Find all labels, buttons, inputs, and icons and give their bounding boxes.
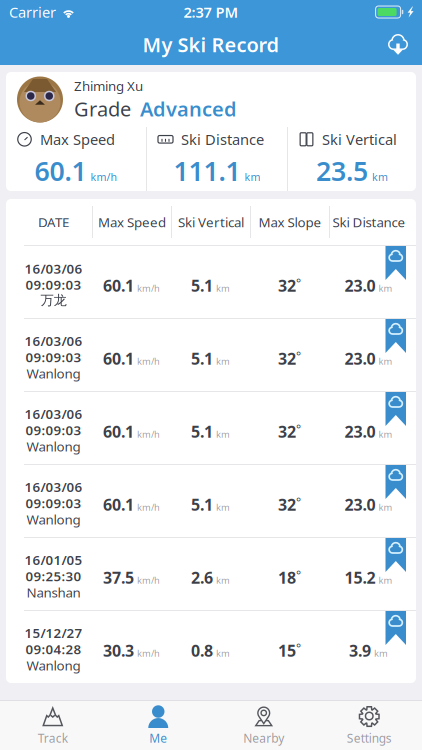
staticText: 09:09:03 bbox=[25, 348, 81, 366]
staticText: 30.3 bbox=[103, 640, 134, 661]
staticText: DATE bbox=[38, 213, 69, 231]
staticText: km bbox=[216, 355, 230, 367]
staticText: 37.5 bbox=[103, 567, 134, 588]
staticText: 23.5 bbox=[316, 153, 368, 188]
button[interactable]: 16/03/06 bbox=[6, 246, 416, 318]
staticText: 0.8 bbox=[191, 640, 213, 661]
staticText: 16/03/06 bbox=[24, 260, 82, 277]
staticText: 60.1 bbox=[103, 421, 134, 442]
button[interactable]: Download bbox=[376, 24, 420, 65]
button[interactable]: 16/03/06 bbox=[6, 319, 416, 391]
staticText: km bbox=[216, 428, 230, 440]
staticText: km/h bbox=[137, 501, 160, 513]
staticText: 09:04:28 bbox=[25, 640, 81, 658]
staticText: 2:37 PM bbox=[183, 2, 238, 22]
staticText: 5.1 bbox=[191, 348, 213, 369]
staticText: km/h bbox=[137, 647, 160, 659]
staticText: 5.1 bbox=[191, 275, 213, 296]
staticText: 32 bbox=[278, 275, 296, 296]
staticText: 3.9 bbox=[349, 640, 371, 661]
staticText: Wanlong bbox=[26, 510, 80, 528]
staticText: Max Slope bbox=[258, 213, 321, 231]
staticText: 09:09:03 bbox=[25, 276, 81, 293]
staticText: Ski Distance bbox=[332, 213, 405, 231]
staticText: ° bbox=[296, 567, 301, 583]
staticText: 32 bbox=[278, 348, 296, 369]
staticText: Ski Vertical bbox=[178, 213, 244, 231]
staticText: 09:09:03 bbox=[25, 494, 81, 512]
staticText: 23.0 bbox=[344, 421, 375, 442]
staticText: Settings bbox=[347, 730, 392, 746]
staticText: Ski Distance bbox=[181, 130, 264, 149]
staticText: 5.1 bbox=[191, 494, 213, 515]
staticText: km bbox=[378, 282, 392, 294]
staticText: 23.0 bbox=[344, 275, 375, 296]
staticText: 23.0 bbox=[344, 494, 375, 515]
staticText: km/h bbox=[137, 282, 160, 294]
staticText: 32 bbox=[278, 494, 296, 515]
staticText: 23.0 bbox=[344, 348, 375, 369]
staticText: ° bbox=[296, 348, 301, 364]
button[interactable]: Me bbox=[105, 701, 211, 750]
staticText: km/h bbox=[90, 170, 117, 184]
staticText: Zhiming Xu bbox=[74, 77, 143, 95]
staticText: Ski Vertical bbox=[322, 130, 397, 149]
staticText: km bbox=[216, 501, 230, 513]
staticText: ° bbox=[296, 640, 301, 656]
staticText: Advanced bbox=[140, 96, 237, 122]
staticText: km/h bbox=[137, 428, 160, 440]
button[interactable]: Nearby bbox=[211, 701, 316, 750]
staticText: Grade bbox=[74, 96, 131, 122]
staticText: 60.1 bbox=[103, 275, 134, 296]
staticText: km bbox=[216, 282, 230, 294]
staticText: km bbox=[244, 170, 260, 184]
staticText: 32 bbox=[278, 421, 296, 442]
staticText: My Ski Record bbox=[142, 31, 279, 58]
staticText: km bbox=[216, 574, 230, 586]
staticText: 111.1 bbox=[173, 153, 240, 188]
button[interactable]: 15/12/27 bbox=[6, 611, 416, 683]
staticText: km/h bbox=[137, 574, 160, 586]
staticText: Track bbox=[38, 730, 68, 746]
staticText: km/h bbox=[137, 355, 160, 367]
staticText: ° bbox=[296, 275, 301, 291]
staticText: 16/01/05 bbox=[24, 551, 82, 569]
staticText: 60.1 bbox=[34, 153, 86, 188]
staticText: Max Speed bbox=[40, 130, 115, 149]
staticText: 16/03/06 bbox=[24, 405, 82, 423]
button[interactable]: Track bbox=[0, 701, 105, 750]
staticText: Nearby bbox=[243, 730, 284, 746]
staticText: Me bbox=[149, 730, 167, 746]
button[interactable]: 16/03/06 bbox=[6, 465, 416, 537]
staticText: Wanlong bbox=[26, 364, 80, 382]
staticText: km bbox=[378, 501, 392, 513]
staticText: 15/12/27 bbox=[24, 624, 82, 642]
staticText: km bbox=[378, 428, 392, 440]
staticText: Max Speed bbox=[98, 213, 166, 231]
staticText: 18 bbox=[278, 567, 296, 588]
staticText: 15.2 bbox=[344, 567, 375, 588]
staticText: km bbox=[216, 647, 230, 659]
staticText: ° bbox=[296, 494, 301, 510]
staticText: ° bbox=[296, 421, 301, 437]
staticText: 60.1 bbox=[103, 348, 134, 369]
staticText: Nanshan bbox=[26, 583, 80, 601]
staticText: 60.1 bbox=[103, 494, 134, 515]
staticText: Wanlong bbox=[26, 437, 80, 455]
staticText: 万龙 bbox=[40, 292, 66, 308]
button[interactable]: 16/01/05 bbox=[6, 538, 416, 610]
staticText: 16/03/06 bbox=[24, 332, 82, 350]
staticText: 16/03/06 bbox=[24, 478, 82, 496]
staticText: km bbox=[378, 574, 392, 586]
staticText: 5.1 bbox=[191, 421, 213, 442]
button[interactable]: 16/03/06 bbox=[6, 392, 416, 464]
staticText: 09:09:03 bbox=[25, 421, 81, 439]
staticText: km bbox=[372, 170, 388, 184]
staticText: Wanlong bbox=[26, 656, 80, 674]
staticText: 2.6 bbox=[191, 567, 213, 588]
staticText: Carrier bbox=[9, 2, 56, 22]
staticText: km bbox=[378, 355, 392, 367]
button[interactable]: Settings bbox=[316, 701, 422, 750]
staticText: 15 bbox=[278, 640, 296, 661]
staticText: 09:25:30 bbox=[25, 567, 81, 585]
